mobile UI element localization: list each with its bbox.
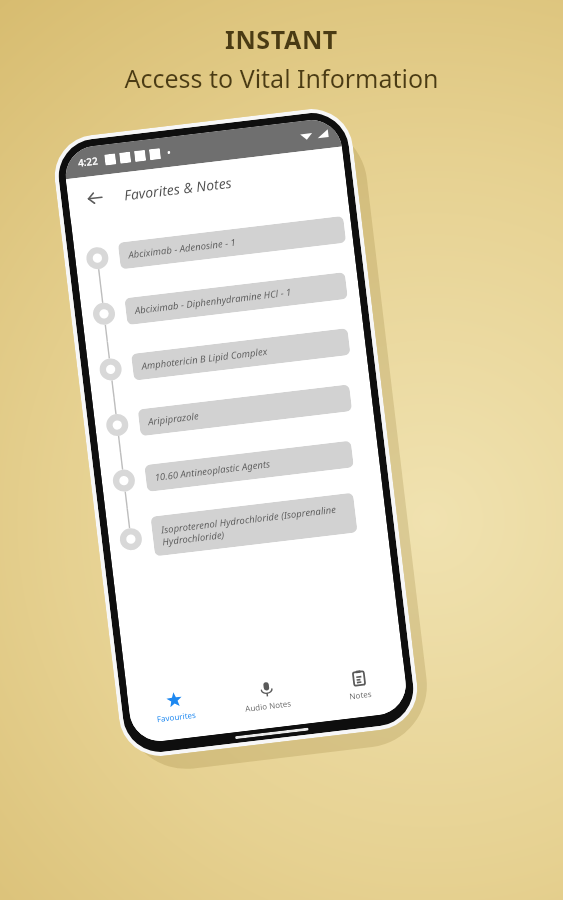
staticText: Favorites & Notes <box>123 173 233 204</box>
staticText: Favourites <box>156 709 197 724</box>
staticText: INSTANT <box>225 22 338 56</box>
button[interactable]: Favourites <box>127 680 222 727</box>
button[interactable]: Notes <box>310 658 407 706</box>
staticText: 4:22 <box>77 153 99 170</box>
staticText: Amphotericin B Lipid Complex <box>141 345 268 373</box>
button[interactable]: Back <box>76 179 114 217</box>
staticText: Notes <box>348 688 372 701</box>
staticText: Audio Notes <box>244 697 292 714</box>
staticText: 10.60 Antineoplastic Agents <box>154 457 272 484</box>
staticText: Aripiprazole <box>147 409 199 428</box>
staticText: Isoproterenol Hydrochloride (Isoprenalin… <box>160 502 348 548</box>
button[interactable]: Abciximab - Diphenhydramine HCl - 1 <box>79 256 362 344</box>
button[interactable]: Isoproterenol Hydrochloride (Isoprenalin… <box>105 478 389 573</box>
staticText: Access to Vital Information <box>124 61 439 95</box>
button[interactable]: 10.60 Antineoplastic Agents <box>99 422 381 511</box>
staticText: Abciximab - Adenosine - 1 <box>127 236 237 261</box>
staticText: Abciximab - Diphenhydramine HCl - 1 <box>134 285 292 317</box>
button[interactable]: Audio Notes <box>218 669 315 717</box>
button[interactable]: Abciximab - Adenosine - 1 <box>72 200 355 289</box>
button[interactable]: Aripiprazole <box>92 367 375 455</box>
button[interactable]: Amphotericin B Lipid Complex <box>85 311 368 400</box>
